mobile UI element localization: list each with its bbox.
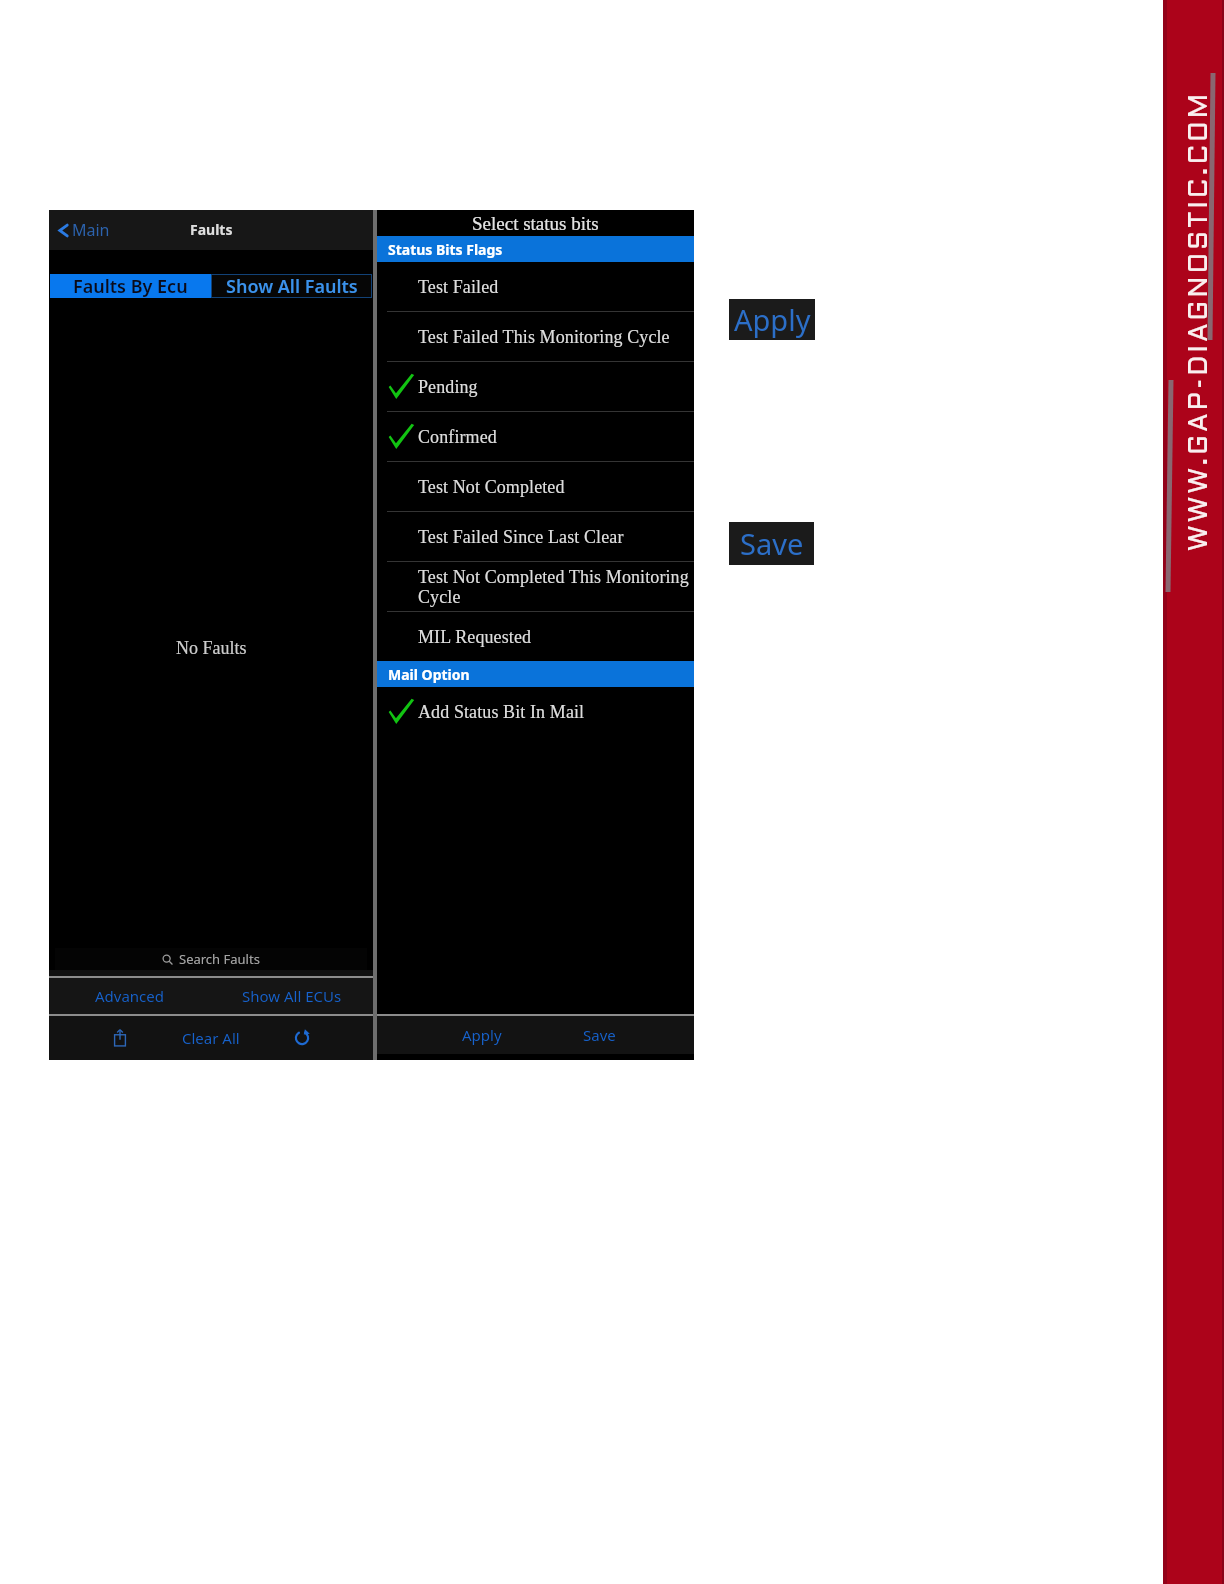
staticText: Test Failed This Monitoring Cycle <box>418 327 670 347</box>
staticText: Main <box>72 219 110 241</box>
button[interactable]: Add Status Bit In Mail <box>377 687 694 736</box>
button[interactable]: Confirmed <box>377 412 694 461</box>
staticText: Add Status Bit In Mail <box>418 702 585 722</box>
button[interactable]: Refresh <box>279 1016 325 1060</box>
button[interactable]: Search Faults <box>55 948 367 970</box>
staticText: Status Bits Flags <box>388 240 503 259</box>
staticText: Mail Option <box>388 665 470 684</box>
button[interactable]: Test Failed Since Last Clear <box>377 512 694 561</box>
button[interactable]: Main <box>55 219 110 241</box>
button[interactable]: Save <box>729 522 814 565</box>
staticText: Confirmed <box>418 427 497 447</box>
staticText: Advanced <box>95 986 165 1006</box>
button[interactable]: Advanced <box>49 978 211 1014</box>
staticText: Test Failed Since Last Clear <box>418 527 624 547</box>
button[interactable]: Save <box>561 1016 637 1054</box>
staticText: Test Not Completed <box>418 477 565 497</box>
staticText: Search Faults <box>179 950 260 968</box>
button[interactable]: Test Not Completed <box>377 462 694 511</box>
staticText: Apply <box>734 300 811 339</box>
button[interactable]: Apply <box>729 299 815 340</box>
staticText: Select status bits <box>472 213 599 234</box>
staticText: Test Failed <box>418 277 499 297</box>
button[interactable]: Faults By Ecu <box>50 274 211 298</box>
button[interactable]: Apply <box>443 1016 521 1054</box>
button[interactable]: MIL Requested <box>377 612 694 661</box>
staticText: Faults By Ecu <box>73 274 188 298</box>
staticText: No Faults <box>176 638 247 658</box>
button[interactable]: Clear All <box>171 1016 251 1060</box>
staticText: Pending <box>418 377 478 397</box>
staticText: Show All Faults <box>226 274 358 298</box>
staticText: Show All ECUs <box>242 986 342 1006</box>
button[interactable]: Test Failed <box>377 262 694 311</box>
button[interactable]: Show All Faults <box>211 274 372 298</box>
button[interactable]: Show All ECUs <box>211 978 373 1014</box>
button[interactable]: Pending <box>377 362 694 411</box>
staticText: MIL Requested <box>418 627 532 647</box>
button[interactable]: Test Not Completed This Monitoring Cycle <box>377 562 694 611</box>
staticText: Save <box>583 1025 616 1045</box>
staticText: Faults <box>190 220 233 239</box>
staticText: Save <box>740 524 804 563</box>
staticText: Test Not Completed This Monitoring Cycle <box>418 567 693 607</box>
button[interactable]: Share <box>97 1016 143 1060</box>
button[interactable]: Test Failed This Monitoring Cycle <box>377 312 694 361</box>
staticText: Clear All <box>182 1028 240 1048</box>
staticText: Apply <box>462 1025 502 1045</box>
